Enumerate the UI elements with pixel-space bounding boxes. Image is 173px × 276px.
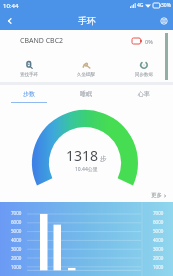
staticText: 7000 xyxy=(153,210,164,216)
staticText: 1000 xyxy=(153,264,164,270)
button[interactable]: 步数 xyxy=(0,85,57,103)
button[interactable]: 同步数据 xyxy=(115,52,173,78)
button[interactable]: 睡眠 xyxy=(57,85,115,103)
staticText: 2000 xyxy=(11,255,22,261)
staticText: 10.44公里 xyxy=(75,166,98,173)
staticText: CBAND CBC2 xyxy=(20,36,64,46)
staticText: 睡眠 xyxy=(80,90,92,98)
button[interactable]: 查找手环 xyxy=(0,52,57,78)
staticText: 4G xyxy=(137,2,144,9)
staticText: 4000 xyxy=(153,237,164,243)
staticText: 更多 xyxy=(151,192,162,199)
staticText: 5000 xyxy=(153,228,164,234)
button[interactable]: CBAND CBC2 xyxy=(0,30,173,52)
staticText: 步 xyxy=(100,155,107,163)
staticText: 7000 xyxy=(11,210,22,216)
button[interactable]: 久坐提醒 xyxy=(57,52,115,78)
staticText: 4000 xyxy=(11,237,22,243)
staticText: 久坐提醒 xyxy=(77,72,95,78)
staticText: 3000 xyxy=(11,246,22,252)
button[interactable]: 更多 xyxy=(151,192,167,199)
staticText: 2000 xyxy=(153,255,164,261)
staticText: 1000 xyxy=(11,264,22,270)
staticText: 3000 xyxy=(153,246,164,252)
staticText: 步数 xyxy=(23,90,35,98)
staticText: 1318 xyxy=(66,146,99,165)
button[interactable]: 心率 xyxy=(115,85,173,103)
staticText: 10:44 xyxy=(3,2,19,10)
staticText: 手环 xyxy=(78,15,96,26)
button[interactable]: Back xyxy=(0,11,19,30)
button[interactable]: More options xyxy=(154,11,173,30)
staticText: 30% xyxy=(161,2,171,9)
staticText: 6000 xyxy=(11,219,22,225)
staticText: 5000 xyxy=(11,228,22,234)
staticText: 查找手环 xyxy=(20,72,38,78)
staticText: 同步数据 xyxy=(135,72,153,78)
staticText: 0% xyxy=(145,38,153,45)
staticText: 心率 xyxy=(138,90,150,98)
staticText: 6000 xyxy=(153,219,164,225)
